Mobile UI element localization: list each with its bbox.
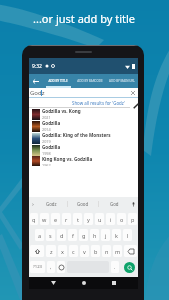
staticText: r [65, 216, 68, 223]
staticText: 2019 [42, 139, 51, 144]
button[interactable]: m [113, 245, 122, 257]
staticText: ADD BY TITLE [48, 79, 68, 83]
button[interactable]: Back [47, 277, 59, 289]
button[interactable]: Key [57, 261, 65, 273]
button[interactable]: q [30, 213, 38, 225]
button[interactable]: Key [124, 245, 137, 257]
button[interactable]: More suggestions [29, 197, 36, 211]
staticText: 2014 [42, 127, 51, 132]
staticText: ...or just add by title [33, 11, 136, 26]
staticText: d [60, 232, 64, 239]
staticText: x [61, 248, 64, 255]
staticText: . [114, 264, 116, 271]
staticText: h [93, 232, 97, 239]
button[interactable]: Clear text [129, 89, 137, 97]
button[interactable]: Key [30, 245, 44, 257]
staticText: Godzilla vs. Kong [42, 108, 81, 114]
button[interactable]: . [111, 261, 119, 273]
button[interactable]: o [117, 213, 126, 225]
button[interactable]: t [73, 213, 82, 225]
staticText: , [50, 264, 52, 271]
button[interactable]: , [47, 261, 55, 273]
staticText: n [105, 248, 109, 255]
button[interactable]: Back [29, 74, 42, 88]
staticText: God [110, 201, 119, 207]
button[interactable]: i [106, 213, 115, 225]
staticText: 9:32 [32, 63, 42, 70]
staticText: l [127, 232, 129, 239]
staticText: a [38, 232, 42, 239]
button[interactable]: King Kong vs. Godzilla [29, 156, 130, 166]
button[interactable]: ADD BY MAIN URL [106, 74, 138, 88]
button[interactable]: s [46, 229, 55, 241]
staticText: s [49, 232, 52, 239]
staticText: Godzilla [42, 144, 61, 150]
staticText: p [131, 216, 135, 223]
button[interactable]: ?123 [30, 261, 45, 273]
button[interactable]: z [46, 245, 56, 257]
staticText: › [32, 200, 34, 208]
button[interactable]: d [57, 229, 66, 241]
staticText: c [72, 248, 75, 255]
staticText: o [120, 216, 124, 223]
staticText: t [77, 216, 79, 223]
staticText: w [42, 216, 47, 223]
staticText: King Kong vs. Godzilla [42, 156, 93, 162]
button[interactable]: Godzilla: King of the Monsters [29, 132, 130, 144]
staticText: u [98, 216, 102, 223]
staticText: v [83, 248, 86, 255]
button[interactable]: Voice input [129, 197, 138, 211]
staticText: i [110, 216, 112, 223]
button[interactable]: Godz [36, 197, 67, 211]
staticText: Good [77, 201, 89, 207]
staticText: q [32, 216, 36, 223]
button[interactable]: Edit [132, 102, 139, 109]
staticText: 1998 [42, 151, 51, 156]
staticText: Godz [46, 201, 57, 207]
button[interactable]: God [99, 197, 129, 211]
button[interactable]: n [102, 245, 111, 257]
button[interactable]: v [80, 245, 89, 257]
button[interactable]: p [128, 213, 137, 225]
button[interactable]: Good [68, 197, 98, 211]
button[interactable]: k [112, 229, 121, 241]
staticText: b [94, 248, 98, 255]
button[interactable]: Godzilla [29, 120, 130, 132]
staticText: e [54, 216, 58, 223]
staticText: f [72, 232, 74, 239]
button[interactable]: w [40, 213, 49, 225]
staticText: Godzilla [42, 120, 61, 126]
staticText: k [115, 232, 118, 239]
button[interactable]: Search [124, 262, 135, 273]
button[interactable]: c [69, 245, 78, 257]
button[interactable]: Godzilla vs. Kong [29, 108, 130, 120]
button[interactable]: ADD BY BARCODE [74, 74, 106, 88]
staticText: Godzilla: King of the Monsters [42, 132, 111, 138]
button[interactable]: f [68, 229, 77, 241]
button[interactable]: Home [78, 277, 90, 289]
button[interactable]: x [58, 245, 67, 257]
button[interactable]: Recents [108, 277, 120, 289]
staticText: ADD BY BARCODE [77, 79, 103, 83]
button[interactable]: y [84, 213, 93, 225]
button[interactable]: e [51, 213, 60, 225]
staticText: Godz [30, 89, 45, 97]
staticText: y [87, 216, 90, 223]
button[interactable]: j [101, 229, 110, 241]
button[interactable]: g [79, 229, 88, 241]
button[interactable]: ADD BY TITLE [42, 74, 74, 88]
button[interactable]: r [62, 213, 71, 225]
button[interactable]: u [95, 213, 104, 225]
staticText: 2021 [42, 115, 51, 120]
button[interactable]: Godzilla [29, 144, 130, 156]
staticText: ADD BY MAIN URL [109, 79, 135, 83]
staticText: Show all results for 'Godz' [72, 100, 125, 106]
staticText: m [115, 248, 121, 255]
button[interactable]: b [91, 245, 100, 257]
button[interactable]: l [123, 229, 132, 241]
button[interactable]: a [35, 229, 44, 241]
staticText: z [50, 248, 53, 255]
staticText: g [82, 232, 86, 239]
button[interactable]: h [90, 229, 99, 241]
